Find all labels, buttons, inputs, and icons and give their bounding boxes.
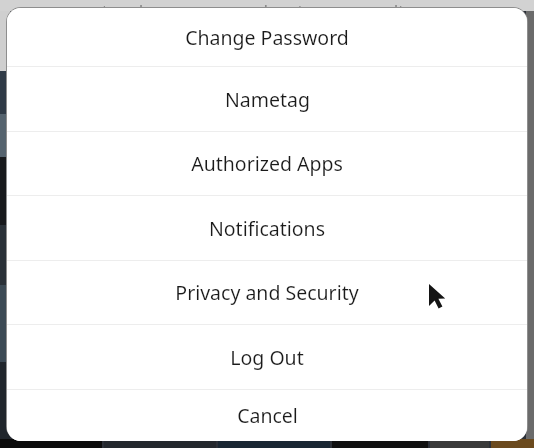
button[interactable]: Notifications xyxy=(7,196,527,260)
button[interactable]: Nametag xyxy=(7,67,527,131)
staticText: Notifications xyxy=(209,215,325,242)
button[interactable]: Authorized Apps xyxy=(7,132,527,195)
staticText: travel, games, cars and contemporary cul… xyxy=(102,0,433,11)
button[interactable]: Log Out xyxy=(7,325,527,389)
staticText: Cancel xyxy=(237,402,298,429)
button[interactable]: Change Password xyxy=(7,8,527,66)
staticText: Nametag xyxy=(225,86,310,113)
staticText: Change Password xyxy=(185,24,349,51)
button[interactable]: Cancel xyxy=(7,390,527,441)
staticText: Privacy and Security xyxy=(175,279,359,306)
staticText: Log Out xyxy=(230,344,304,371)
staticText: Authorized Apps xyxy=(191,150,343,177)
button[interactable]: Privacy and Security xyxy=(7,261,527,324)
